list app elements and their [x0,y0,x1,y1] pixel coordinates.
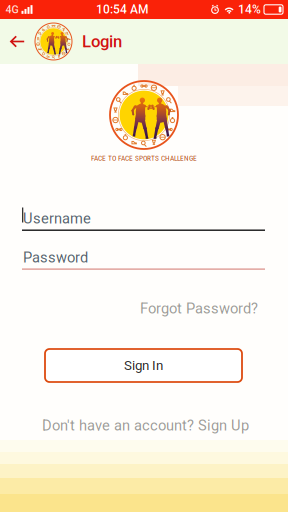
staticText: 4G [5,3,18,16]
staticText: 14% [238,2,261,17]
staticText: Don't have an account? Sign Up [42,417,249,434]
button[interactable]: Sign In [45,349,242,382]
staticText: Login [82,32,122,51]
staticText: Username [23,210,91,227]
staticText: 10:54 AM [96,2,148,17]
staticText: Password [23,249,88,266]
button[interactable]: Back [0,24,35,58]
staticText: FACE TO FACE SPORTS CHALLENGE [91,154,197,163]
button[interactable]: Don't have an account? Sign Up [37,411,254,440]
button[interactable]: Forgot Password? [135,294,263,323]
staticText: Sign In [124,358,163,373]
staticText: Forgot Password? [140,300,258,317]
